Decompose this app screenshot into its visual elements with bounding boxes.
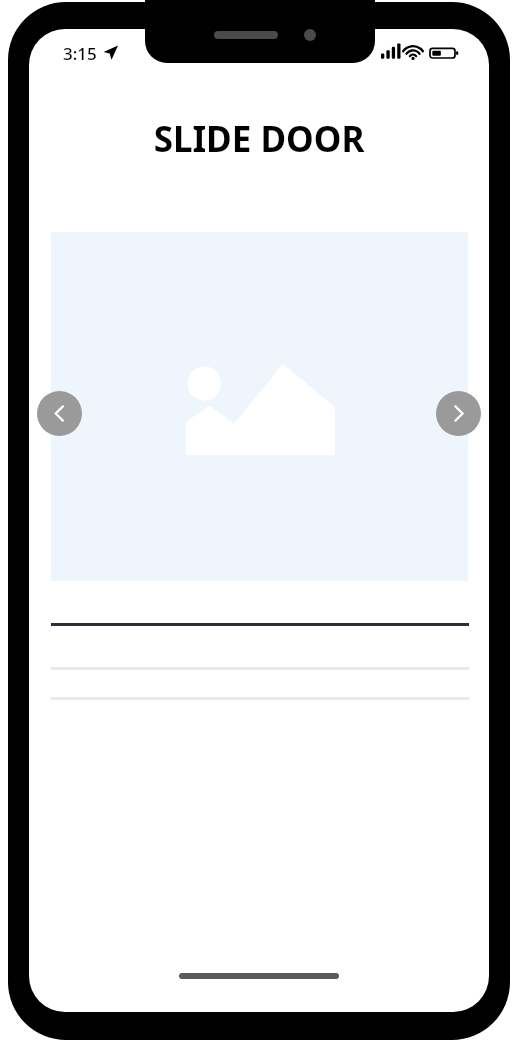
button[interactable]: Previous slide — [37, 391, 82, 436]
button[interactable]: Next slide — [436, 391, 481, 436]
staticText: SLIDE DOOR — [29, 115, 489, 163]
button[interactable] — [51, 232, 468, 581]
staticText: 3:15 — [63, 42, 97, 65]
